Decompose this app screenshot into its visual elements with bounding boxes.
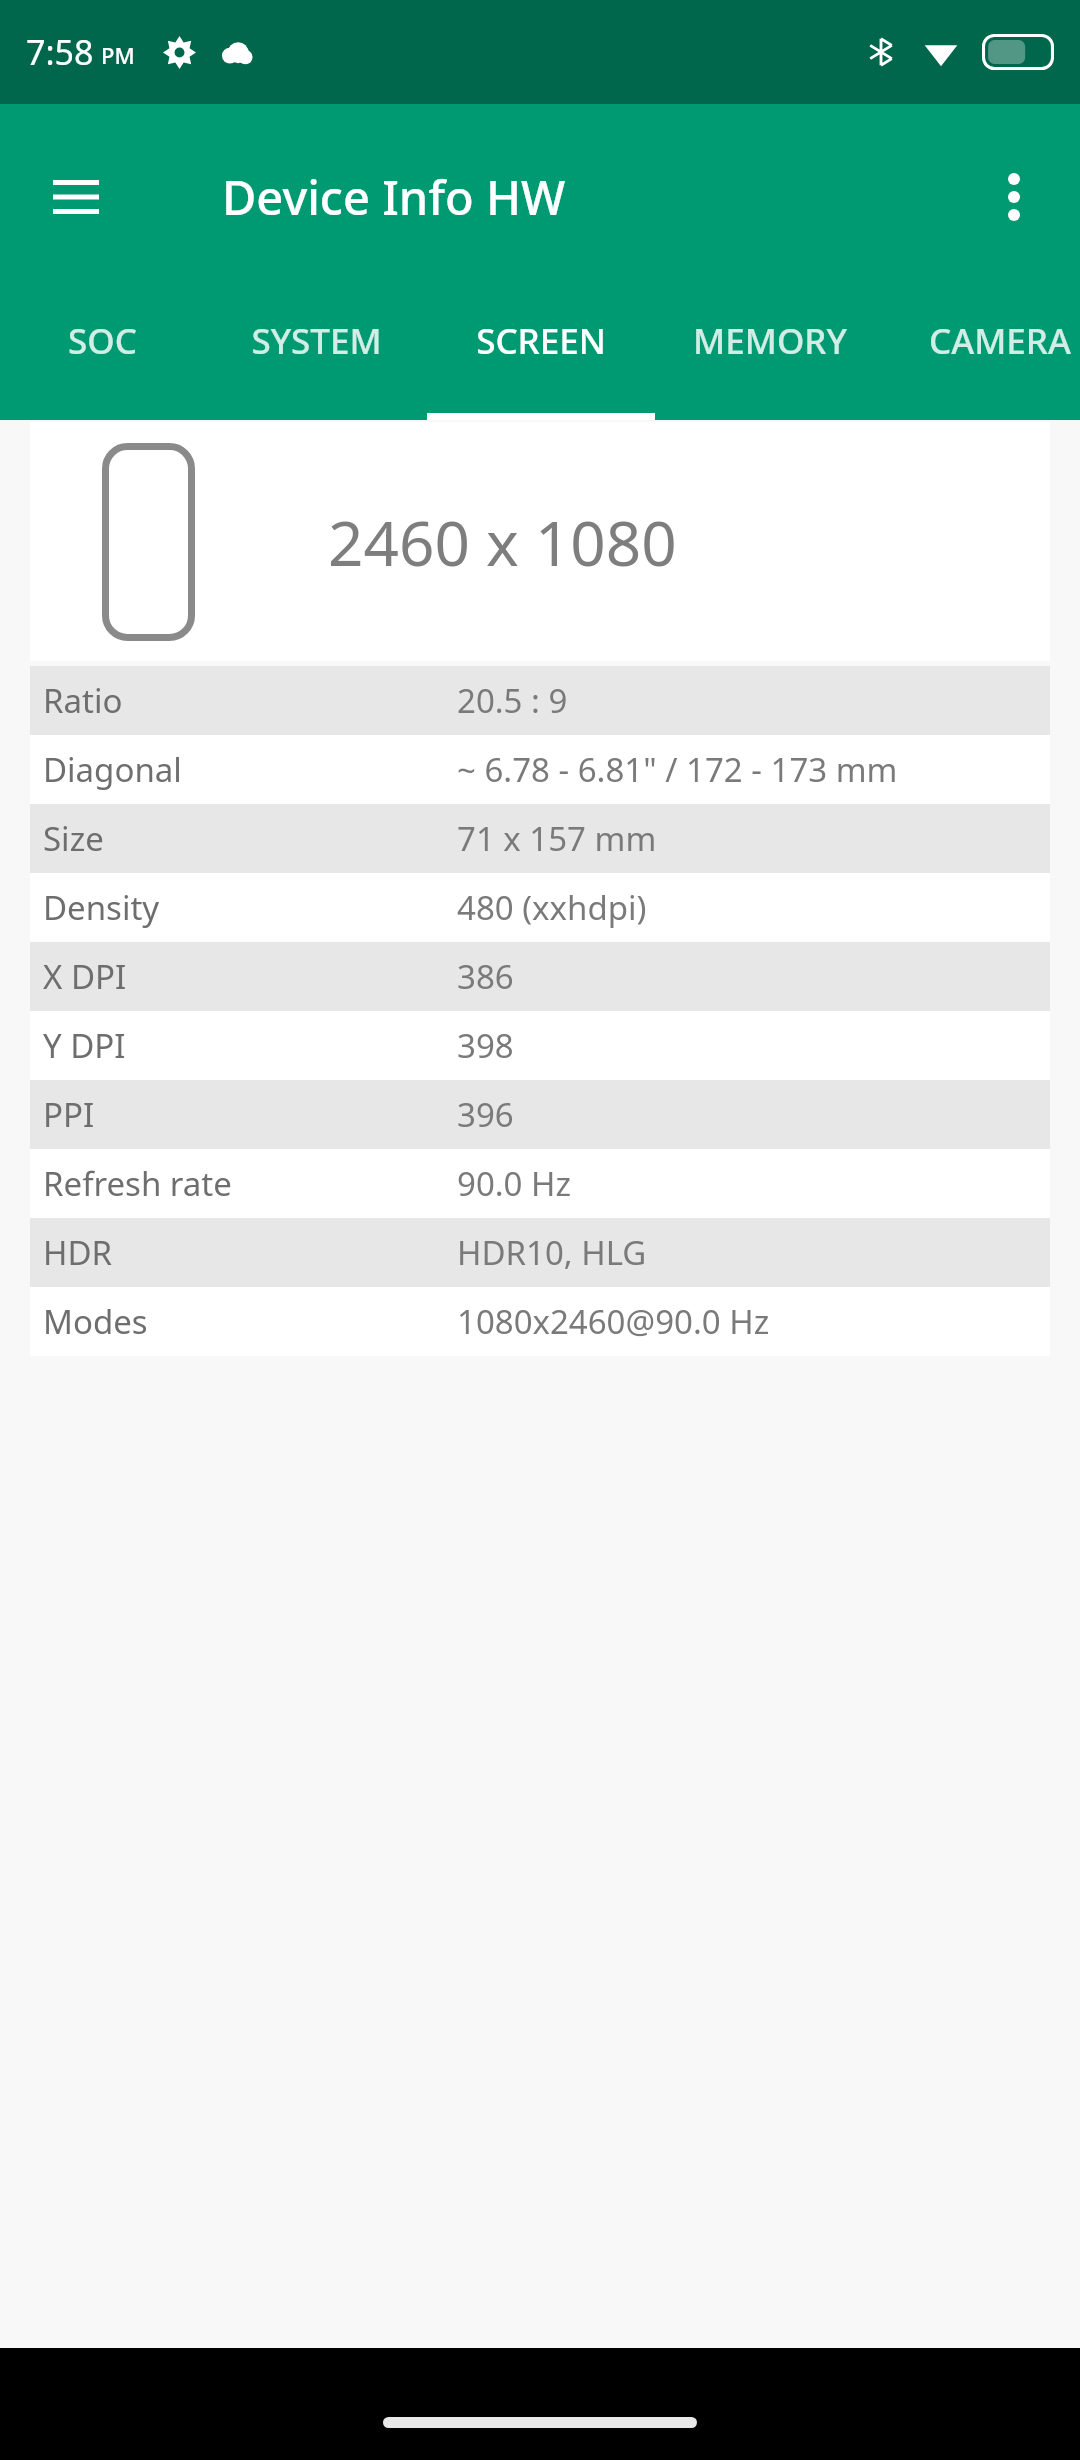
staticText: PPI — [43, 1092, 243, 1137]
staticText: CAMERA — [929, 317, 1071, 365]
staticText: Ratio — [43, 678, 243, 723]
staticText: 1080x2460@90.0 Hz — [457, 1299, 770, 1344]
staticText: MEMORY — [693, 317, 847, 365]
staticText: Density — [43, 885, 243, 930]
button[interactable]: PPI — [30, 1080, 1050, 1149]
button[interactable]: MEMORY — [655, 290, 885, 420]
button[interactable]: Modes — [30, 1287, 1050, 1356]
button[interactable]: SCREEN — [427, 290, 655, 420]
staticText: Modes — [43, 1299, 243, 1344]
staticText: SOC — [68, 317, 137, 365]
staticText: HDR10, HLG — [457, 1230, 647, 1275]
staticText: 20.5 : 9 — [457, 678, 568, 723]
staticText: HDR — [43, 1230, 243, 1275]
button[interactable]: Ratio — [30, 666, 1050, 735]
staticText: SCREEN — [476, 317, 606, 365]
button[interactable]: Density — [30, 873, 1050, 942]
button[interactable]: SYSTEM — [205, 290, 427, 420]
staticText: 7:58 — [26, 29, 94, 75]
button[interactable]: Size — [30, 804, 1050, 873]
staticText: 2460 x 1080 — [328, 500, 677, 584]
staticText: ~ 6.78 - 6.81" / 172 - 173 mm — [457, 747, 898, 792]
staticText: 90.0 Hz — [457, 1161, 572, 1206]
staticText: Size — [43, 816, 243, 861]
staticText: 396 — [457, 1092, 514, 1137]
staticText: Refresh rate — [43, 1161, 243, 1206]
staticText: X DPI — [43, 954, 243, 999]
staticText: SYSTEM — [251, 317, 382, 365]
staticText: Y DPI — [43, 1023, 243, 1068]
staticText: Diagonal — [43, 747, 243, 792]
button[interactable]: HDR — [30, 1218, 1050, 1287]
staticText: 398 — [457, 1023, 514, 1068]
button[interactable]: SOC — [0, 290, 205, 420]
button[interactable]: Open navigation menu — [38, 159, 114, 235]
button[interactable]: Diagonal — [30, 735, 1050, 804]
staticText: 386 — [457, 954, 514, 999]
button[interactable]: More options — [976, 159, 1052, 235]
staticText: 480 (xxhdpi) — [457, 885, 647, 930]
button[interactable]: X DPI — [30, 942, 1050, 1011]
button[interactable]: Refresh rate — [30, 1149, 1050, 1218]
staticText: 71 x 157 mm — [457, 816, 657, 861]
button[interactable]: CAMERA — [885, 290, 1080, 420]
staticText: PM — [101, 40, 135, 70]
button[interactable]: Y DPI — [30, 1011, 1050, 1080]
staticText: Device Info HW — [222, 165, 566, 229]
